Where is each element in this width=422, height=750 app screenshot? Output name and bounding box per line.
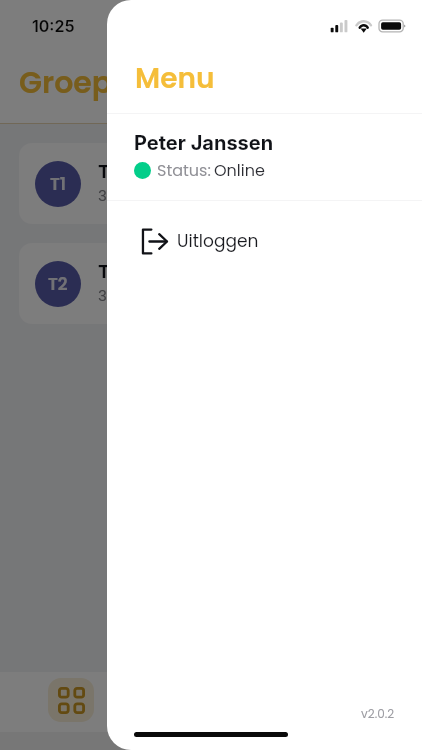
staticText: Uitloggen <box>177 229 259 253</box>
staticText: 3 leden <box>98 285 153 306</box>
staticText: Groepen <box>19 62 151 104</box>
staticText: Peter Janssen <box>134 131 274 155</box>
button[interactable]: T1 <box>19 143 403 224</box>
staticText: Team 2 <box>98 261 162 283</box>
staticText: Status: <box>157 159 211 181</box>
staticText: T2 <box>48 272 68 296</box>
button[interactable]: Groepen <box>48 678 94 722</box>
staticText: Team 1 <box>98 161 159 183</box>
staticText: 10:25 <box>32 16 75 35</box>
staticText: Menu <box>135 59 215 98</box>
staticText: v2.0.2 <box>361 705 395 722</box>
button[interactable]: Uitloggen <box>107 212 422 270</box>
staticText: 3 leden <box>98 185 153 206</box>
button[interactable]: T2 <box>19 243 403 324</box>
staticText: Online <box>214 159 265 181</box>
staticText: T1 <box>50 172 66 196</box>
